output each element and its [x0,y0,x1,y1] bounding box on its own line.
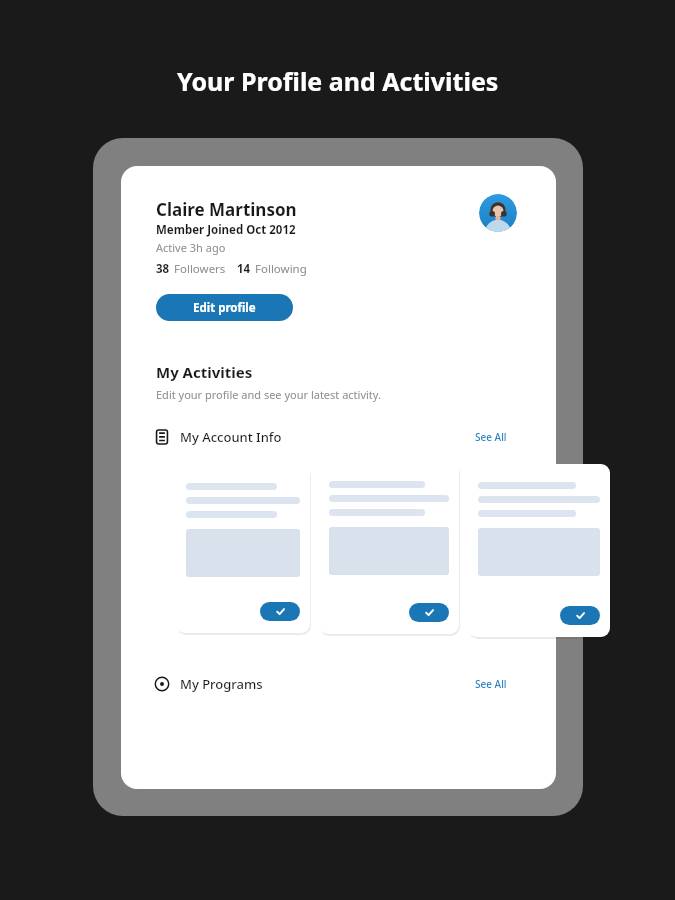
staticText: 38 [156,261,170,277]
button[interactable]: Activity card [176,465,310,633]
button[interactable]: Activity card [468,464,610,637]
staticText: Your Profile and Activities [177,64,499,98]
button[interactable]: See All [475,430,507,444]
staticText: 14 [237,261,251,277]
staticText: See All [475,677,507,691]
staticText: Member Joined Oct 2012 [156,222,296,238]
button[interactable]: Edit profile [156,294,293,321]
button[interactable]: See All [475,677,507,691]
button[interactable]: Completed [260,602,300,621]
staticText: My Programs [180,675,263,693]
staticText: My Activities [156,362,253,382]
button[interactable]: Completed [560,606,600,625]
staticText: Following [255,261,307,277]
staticText: Followers [174,261,226,277]
button[interactable]: My Programs [149,671,529,697]
staticText: Claire Martinson [156,198,297,221]
staticText: Edit your profile and see your latest ac… [156,387,381,402]
button[interactable]: Activity card [319,463,459,634]
staticText: Active 3h ago [156,240,226,255]
staticText: Edit profile [193,300,256,316]
button[interactable]: My Account Info [149,424,529,450]
staticText: See All [475,430,507,444]
staticText: My Account Info [180,428,282,446]
button[interactable]: Profile photo [479,194,517,232]
button[interactable]: Completed [409,603,449,622]
